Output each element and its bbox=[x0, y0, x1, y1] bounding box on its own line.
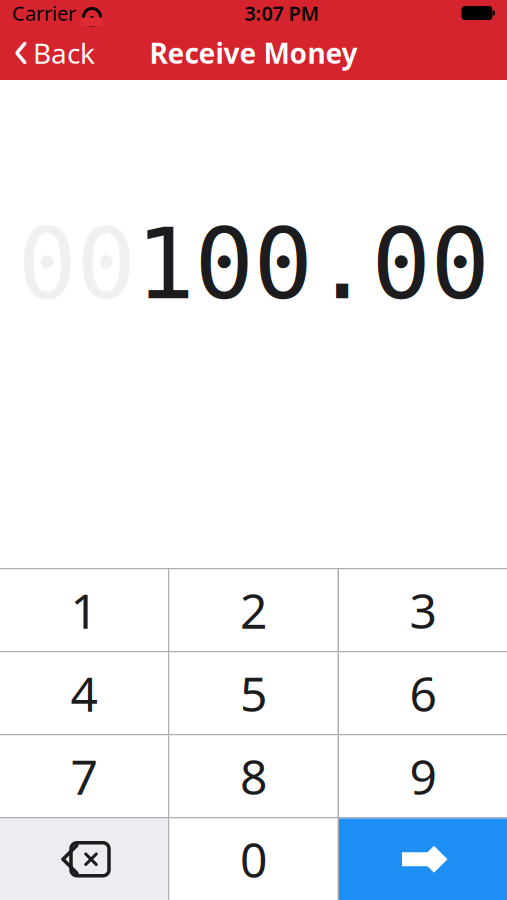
staticText: 5 bbox=[240, 661, 267, 725]
staticText: 4 bbox=[70, 661, 97, 725]
staticText: 6 bbox=[409, 661, 436, 725]
staticText: Receive Money bbox=[149, 34, 357, 72]
button[interactable]: Back bbox=[0, 26, 109, 80]
staticText: 3 bbox=[409, 578, 436, 642]
staticText: 8 bbox=[240, 744, 267, 808]
button[interactable]: 0 bbox=[169, 818, 337, 900]
button[interactable]: 1 bbox=[0, 569, 168, 651]
button[interactable]: 2 bbox=[169, 569, 337, 651]
staticText: 9 bbox=[409, 744, 436, 808]
button[interactable]: 6 bbox=[339, 652, 507, 734]
button[interactable]: 3 bbox=[339, 569, 507, 651]
staticText: 7 bbox=[70, 744, 97, 808]
staticText: 3:07 PM bbox=[244, 0, 319, 26]
button[interactable]: 5 bbox=[169, 652, 337, 734]
staticText: 00 bbox=[17, 208, 135, 320]
button[interactable]: Delete bbox=[0, 818, 168, 900]
button[interactable]: 9 bbox=[339, 735, 507, 817]
button[interactable]: Continue bbox=[339, 818, 507, 900]
button[interactable]: 8 bbox=[169, 735, 337, 817]
staticText: 2 bbox=[240, 578, 267, 642]
staticText: 100.00 bbox=[135, 208, 489, 320]
staticText: Carrier bbox=[12, 0, 76, 26]
staticText: 0 bbox=[240, 827, 267, 891]
staticText: 1 bbox=[70, 578, 97, 642]
staticText: Back bbox=[33, 34, 95, 72]
button[interactable]: 7 bbox=[0, 735, 168, 817]
button[interactable]: 4 bbox=[0, 652, 168, 734]
